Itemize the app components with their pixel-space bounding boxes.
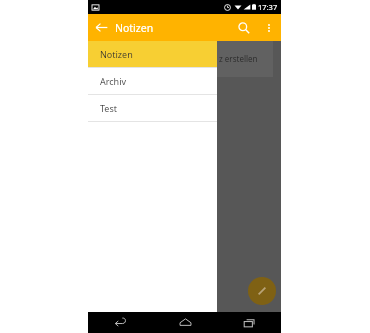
button[interactable]: Zurück [88, 14, 115, 41]
button[interactable]: Weitere Optionen [257, 16, 281, 40]
button[interactable]: Suchen [230, 14, 257, 41]
staticText: Test [100, 102, 118, 114]
staticText: Archiv [100, 75, 127, 87]
button[interactable]: Neue Notiz erstellen [248, 277, 276, 305]
button[interactable]: Startbildschirm [153, 312, 217, 333]
staticText: Notizen [115, 21, 154, 35]
staticText: z erstellen [219, 53, 258, 64]
staticText: 17:37 [258, 2, 278, 12]
button[interactable]: Test [88, 95, 217, 121]
button[interactable]: Neue Notiz erstellen [96, 41, 273, 77]
button[interactable]: Zuletzt verwendet [217, 312, 281, 333]
button[interactable]: Notizen [88, 41, 217, 67]
staticText: Notizen [100, 48, 133, 60]
button[interactable]: Zurück [88, 312, 153, 333]
button[interactable]: Archiv [88, 68, 217, 94]
staticText: Neue Notiz erstellen [106, 53, 188, 65]
